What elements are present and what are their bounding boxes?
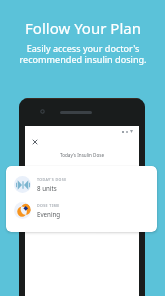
staticText: Evening: [37, 210, 61, 218]
staticText: TODAY'S DOSE: [37, 177, 67, 182]
staticText: DOSE TIME: [37, 203, 60, 208]
staticText: Follow Your Plan: [25, 18, 141, 38]
staticText: Easily access your doctor's recommended …: [19, 42, 147, 65]
staticText: Today's Insulin Dose: [60, 152, 104, 158]
button[interactable]: DOSE TIME: [6, 197, 157, 223]
button[interactable]: TODAY'S DOSE: [6, 171, 157, 197]
staticText: 8 units: [37, 184, 57, 192]
button[interactable]: Close: [30, 137, 40, 147]
